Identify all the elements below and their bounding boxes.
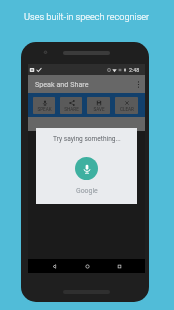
staticText: SHARE: [64, 107, 79, 112]
staticText: SPEAK: [37, 107, 52, 112]
button[interactable]: Share: [60, 97, 82, 114]
staticText: SAVE: [93, 107, 105, 112]
button[interactable]: Speak: [33, 97, 55, 114]
staticText: Speak and Share: [35, 80, 89, 88]
button[interactable]: Back: [47, 259, 61, 273]
staticText: Try saying something...: [53, 135, 121, 143]
button[interactable]: Save: [87, 97, 110, 114]
button[interactable]: Home: [80, 259, 94, 273]
button[interactable]: Clear: [115, 97, 138, 114]
button[interactable]: More options: [131, 77, 145, 91]
staticText: Google: [76, 187, 98, 195]
staticText: 2:48: [129, 67, 140, 73]
button[interactable]: Microphone: [75, 157, 98, 180]
button[interactable]: Recents: [112, 259, 126, 273]
staticText: Uses built-in speech recogniser: [24, 11, 150, 22]
staticText: CLEAR: [120, 107, 134, 112]
